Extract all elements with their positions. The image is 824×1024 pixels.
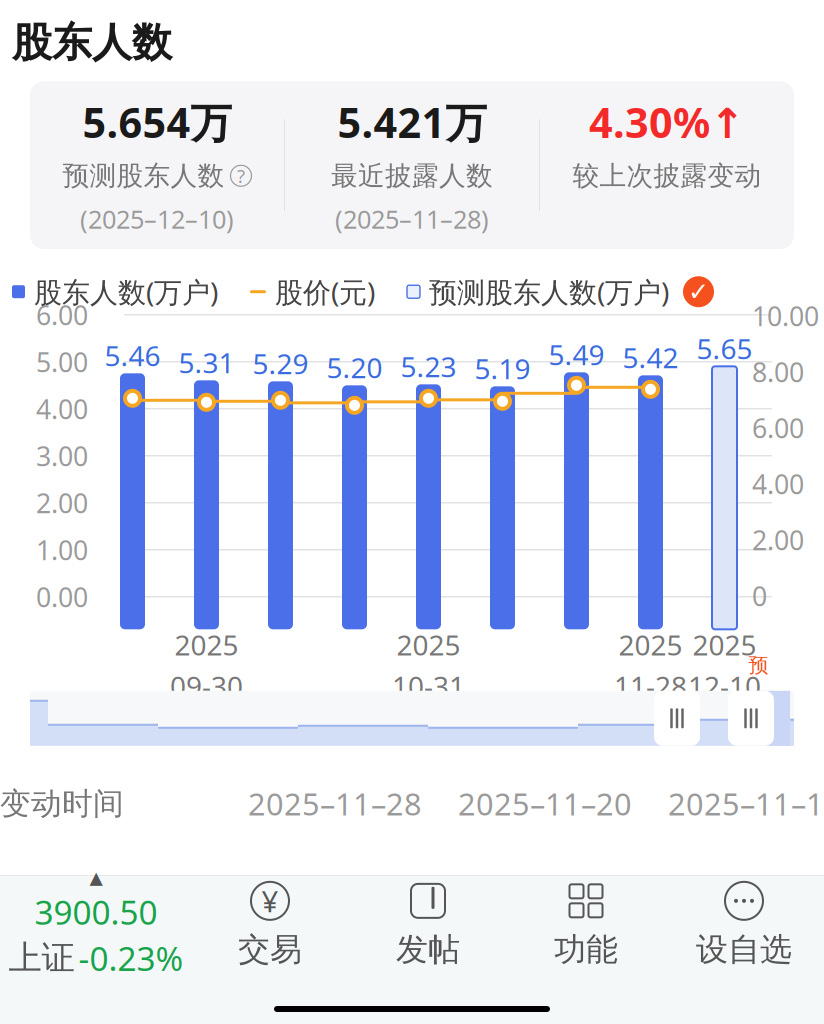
staticText: 5.65 [696,330,752,367]
staticText: 0.00 [36,579,88,614]
button[interactable]: 已选预测股东人数 [683,276,714,307]
staticText: 5.654万 [82,94,231,149]
staticText: -0.23% [78,936,183,980]
staticText: 3900.50 [34,890,157,934]
staticText: 1.00 [36,532,88,567]
staticText: 10-31 [392,667,465,704]
staticText: 5.20 [326,349,382,386]
staticText: 5.19 [474,350,530,387]
button[interactable]: 发帖 [349,876,507,972]
staticText: 设自选 [696,930,792,969]
staticText: 5.42 [622,339,678,376]
staticText: 交易 [238,930,302,969]
staticText: 2025 [174,626,238,663]
staticText: 发帖 [396,930,460,969]
button[interactable]: 功能 [507,876,665,972]
staticText: 变动时间 [0,785,124,822]
staticText: 2025 [618,626,682,663]
staticText: 2.00 [36,485,88,520]
staticText: 股价(元) [275,273,375,310]
staticText: 2.00 [752,522,804,557]
staticText: 5.29 [252,345,308,382]
staticText: 5.23 [400,348,456,385]
staticText: ¥ [261,881,278,920]
staticText: 预测股东人数 [62,159,224,192]
staticText: ▲ [89,868,102,888]
staticText: 4.00 [36,391,88,426]
staticText: 2025 [692,626,756,663]
staticText: 2025–11–1 [668,783,824,824]
staticText: 预 [748,653,768,678]
staticText: (2025–11–28) [335,202,489,236]
staticText: 4.00 [752,466,804,501]
button[interactable]: 设自选 [665,876,823,972]
staticText: 2025 [396,626,460,663]
staticText: 功能 [554,930,618,969]
staticText: 5.421万 [337,94,486,149]
staticText: 10.00 [752,298,819,333]
staticText: 0 [752,578,767,613]
staticText: 5.31 [178,344,234,381]
staticText: ✓ [688,277,709,306]
staticText: ? [237,163,245,188]
button[interactable]: 上证指数 3900.50 [1,876,191,972]
button[interactable]: 调整时间范围 [654,691,700,746]
staticText: 较上次披露变动 [572,159,761,192]
staticText: 上证 [8,937,74,978]
staticText: 3.00 [36,438,88,473]
staticText: 预测股东人数(万户) [429,273,669,310]
staticText: 5.00 [36,344,88,379]
staticText: (2025–12–10) [80,202,234,236]
staticText: 6.00 [36,297,88,332]
staticText: 股东人数 [12,18,172,67]
staticText: 6.00 [752,410,804,445]
staticText: 2025–11–20 [458,783,632,824]
staticText: 8.00 [752,354,804,389]
staticText: 4.30%↑ [589,94,745,149]
staticText: 2025–11–28 [248,783,422,824]
staticText: 5.46 [104,337,160,374]
button[interactable]: ¥ [191,876,349,972]
staticText: 09-30 [170,667,243,704]
staticText: 最近披露人数 [331,159,493,192]
button[interactable]: 调整时间范围 [728,691,774,746]
staticText: 11-28 [614,667,687,704]
staticText: 12-10 [688,667,761,704]
staticText: 股东人数(万户) [34,273,218,310]
staticText: 5.49 [548,336,604,373]
